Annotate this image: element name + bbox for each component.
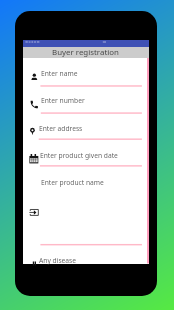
button[interactable]: Enter product given date bbox=[23, 140, 149, 167]
staticText: Enter name bbox=[41, 69, 78, 78]
staticText: Enter product name bbox=[41, 178, 104, 187]
staticText: Enter address bbox=[39, 124, 83, 133]
staticText: Buyer registration bbox=[52, 47, 119, 58]
button[interactable]: Buyer registration bbox=[23, 47, 149, 58]
button[interactable]: Enter number bbox=[23, 87, 149, 114]
staticText: Enter product given date bbox=[40, 151, 118, 160]
staticText: Any disease bbox=[39, 256, 77, 265]
button[interactable]: Enter address bbox=[23, 114, 149, 140]
staticText: Enter number bbox=[41, 96, 85, 105]
button[interactable]: Enter name bbox=[23, 63, 149, 87]
button[interactable]: Enter product name bbox=[23, 167, 149, 245]
button[interactable]: Any disease bbox=[23, 245, 149, 264]
